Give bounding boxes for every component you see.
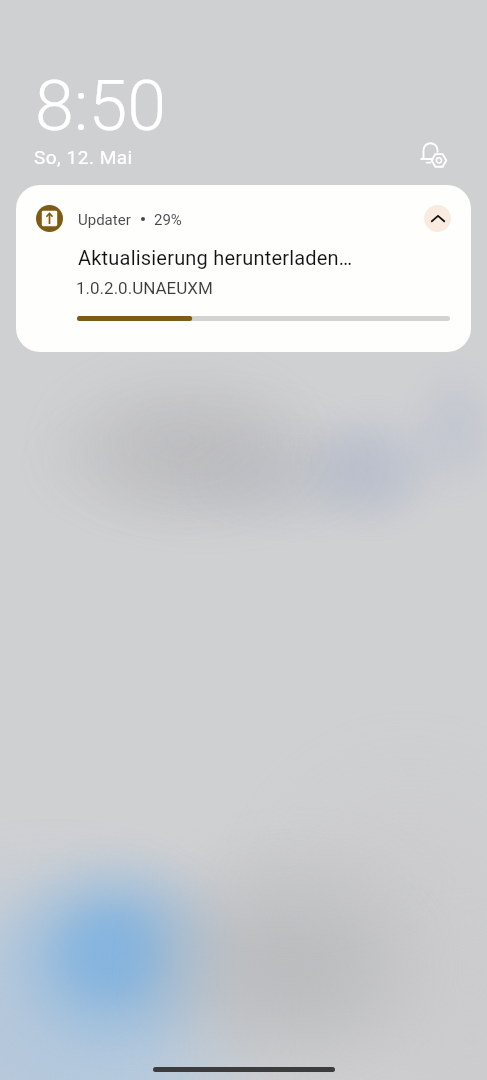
staticText: 1.0.2.0.UNAEUXM <box>76 278 213 298</box>
button[interactable]: Collapse notification <box>424 205 451 232</box>
staticText: Aktualisierung herunterladen… <box>78 246 353 269</box>
staticText: 8:50 <box>35 65 167 147</box>
button[interactable]: Notification settings <box>413 134 457 178</box>
button[interactable]: Updater <box>16 185 471 352</box>
staticText: 29% <box>154 211 182 229</box>
staticText: Updater <box>78 211 131 229</box>
staticText: So, 12. Mai <box>34 146 133 168</box>
